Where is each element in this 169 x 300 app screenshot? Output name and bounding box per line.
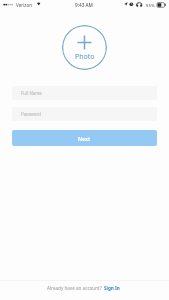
button[interactable]: Already have an account? (44, 282, 123, 294)
staticText: Password (21, 111, 41, 117)
staticText: Next (78, 135, 91, 142)
staticText: Verizon (16, 2, 33, 8)
staticText: Already have an account? (47, 285, 102, 291)
staticText: Sign In (104, 285, 120, 291)
staticText: 9:43 AM (75, 2, 93, 8)
button[interactable]: Add photo (62, 25, 107, 70)
button[interactable]: Password (12, 107, 157, 121)
staticText: Photo (75, 52, 95, 62)
staticText: 55% (146, 2, 155, 8)
staticText: Full Name (21, 90, 42, 96)
button[interactable]: Full Name (12, 86, 157, 100)
button[interactable]: Next (12, 130, 157, 146)
